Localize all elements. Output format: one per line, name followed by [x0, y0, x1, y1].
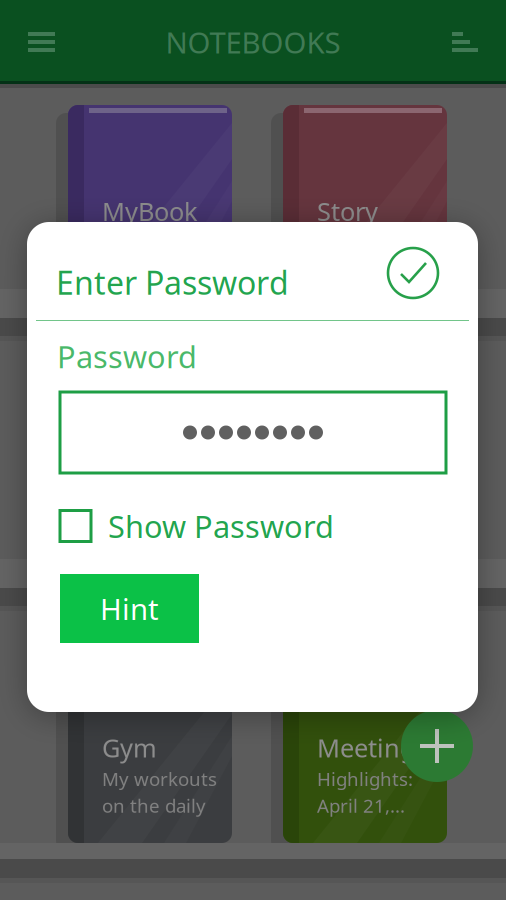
staticText: Show Password — [108, 506, 334, 546]
staticText: Notes — [102, 464, 171, 498]
staticText: Ideas — [317, 464, 382, 498]
staticText: Gym — [102, 731, 157, 764]
button[interactable]: Confirm — [387, 247, 439, 299]
button[interactable]: New notebook — [401, 710, 473, 782]
staticText: Story — [317, 194, 378, 228]
staticText: Password — [57, 336, 197, 377]
staticText: Highlights: — [317, 766, 413, 791]
staticText: Enter Password — [56, 261, 289, 303]
staticText: April 21,... — [317, 793, 405, 818]
staticText: on the daily — [102, 793, 206, 818]
button[interactable]: Menu — [0, 0, 83, 84]
button[interactable]: Sort — [438, 0, 492, 84]
button[interactable]: Hint — [60, 574, 199, 643]
staticText: MyBook — [102, 194, 198, 228]
button[interactable]: Show Password — [60, 507, 334, 545]
staticText: Meeting — [317, 731, 416, 764]
staticText: My workouts — [102, 766, 217, 791]
staticText: NOTEBOOKS — [165, 22, 340, 61]
staticText: Hint — [100, 589, 159, 628]
